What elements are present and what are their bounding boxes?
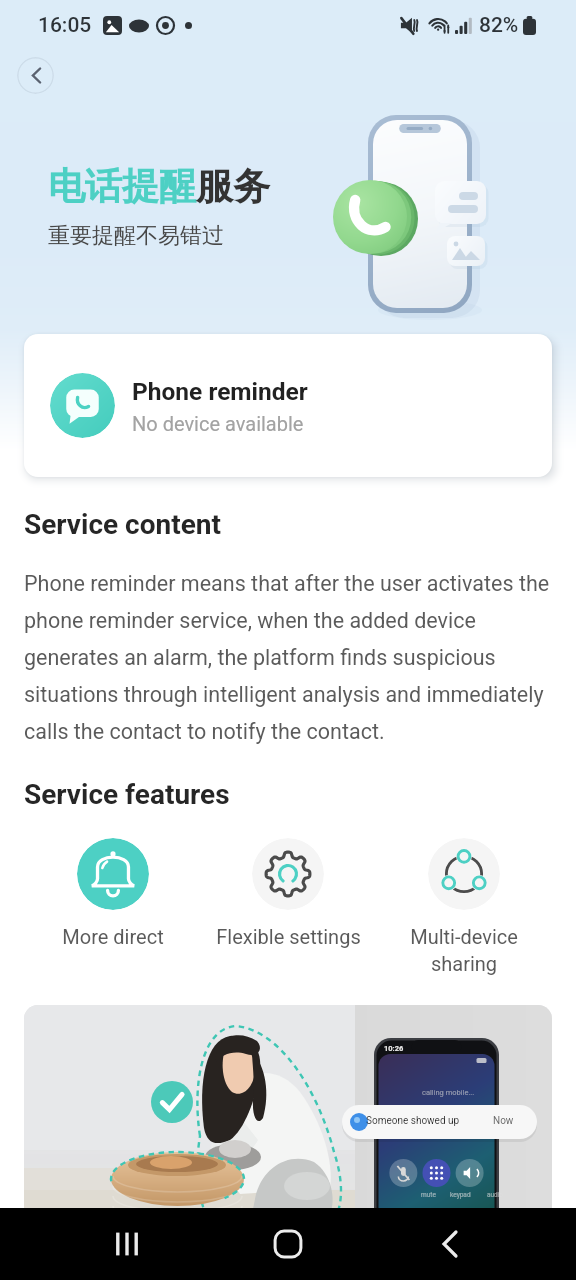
staticText: Phone reminder means that after the user…: [24, 571, 552, 744]
staticText: Service content: [24, 508, 221, 541]
staticText: Flexible settings: [216, 925, 361, 948]
button[interactable]: Flexible settings: [208, 838, 368, 948]
staticText: Multi-device sharing: [410, 925, 518, 976]
staticText: Service features: [24, 778, 230, 811]
button[interactable]: Phone reminder: [24, 334, 552, 477]
staticText: 电话提醒服务: [48, 163, 270, 210]
staticText: Now: [493, 1115, 514, 1127]
button[interactable]: Home: [252, 1208, 324, 1280]
staticText: Someone showed up: [366, 1115, 460, 1127]
button[interactable]: Back: [17, 57, 54, 94]
staticText: No device available: [132, 412, 304, 435]
staticText: 重要提醒不易错过: [48, 222, 224, 250]
staticText: mute: [421, 1191, 436, 1199]
button[interactable]: Multi-device sharing: [384, 838, 544, 976]
staticText: 82%: [479, 13, 519, 38]
staticText: 16:05: [38, 13, 92, 38]
button[interactable]: Back: [414, 1208, 486, 1280]
staticText: audio: [487, 1191, 504, 1199]
staticText: keypad: [450, 1191, 471, 1199]
staticText: calling mobile...: [422, 1088, 475, 1097]
staticText: 10:26: [384, 1044, 404, 1053]
staticText: Phone reminder: [132, 377, 308, 406]
button[interactable]: More direct: [33, 838, 193, 948]
button[interactable]: Recent apps: [91, 1208, 163, 1280]
staticText: More direct: [62, 925, 164, 948]
